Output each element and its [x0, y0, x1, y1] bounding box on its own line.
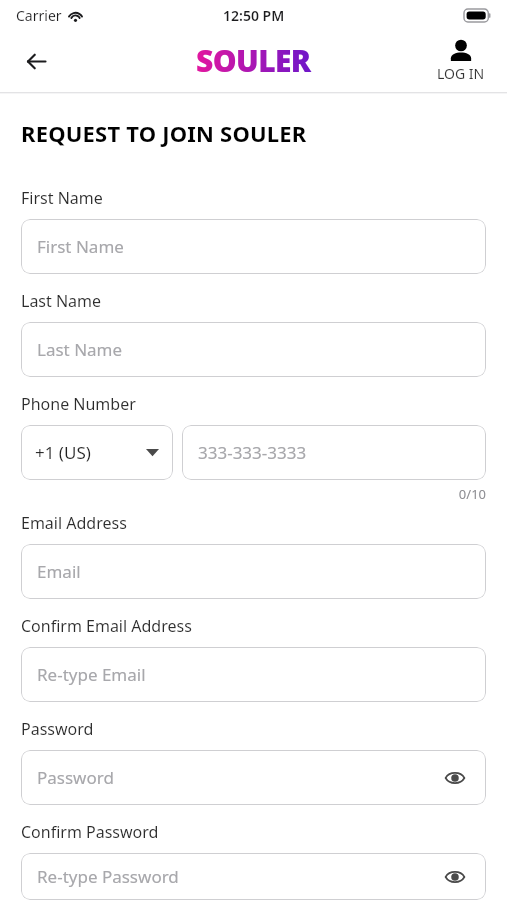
- button[interactable]: Re-type Password: [21, 853, 486, 900]
- button[interactable]: First Name: [21, 219, 486, 274]
- staticText: Last Name: [21, 290, 102, 312]
- staticText: LOG IN: [437, 64, 485, 83]
- staticText: First Name: [37, 235, 124, 258]
- button[interactable]: Password: [21, 750, 486, 805]
- staticText: 333-333-3333: [198, 441, 307, 464]
- button[interactable]: +1 (US): [21, 425, 173, 480]
- staticText: Email: [37, 560, 81, 583]
- button[interactable]: Email: [21, 544, 486, 599]
- button[interactable]: Show password: [440, 862, 470, 892]
- staticText: Re-type Email: [37, 663, 146, 686]
- staticText: SOULER: [196, 40, 311, 81]
- button[interactable]: Last Name: [21, 322, 486, 377]
- staticText: 0/10: [21, 485, 486, 503]
- staticText: Password: [37, 766, 114, 789]
- button[interactable]: LOG IN: [429, 39, 493, 83]
- staticText: Last Name: [37, 338, 123, 361]
- staticText: REQUEST TO JOIN SOULER: [21, 118, 307, 148]
- staticText: Confirm Password: [21, 821, 159, 843]
- button[interactable]: Back: [10, 35, 62, 87]
- staticText: Password: [21, 718, 94, 740]
- staticText: Confirm Email Address: [21, 615, 192, 637]
- staticText: Phone Number: [21, 393, 136, 415]
- staticText: Email Address: [21, 512, 127, 534]
- staticText: Carrier: [16, 6, 62, 25]
- staticText: First Name: [21, 187, 103, 209]
- staticText: Re-type Password: [37, 865, 179, 888]
- staticText: +1 (US): [35, 441, 91, 464]
- staticText: 12:50 PM: [223, 6, 285, 25]
- button[interactable]: 333-333-3333: [182, 425, 486, 480]
- button[interactable]: Re-type Email: [21, 647, 486, 702]
- button[interactable]: Show password: [440, 763, 470, 793]
